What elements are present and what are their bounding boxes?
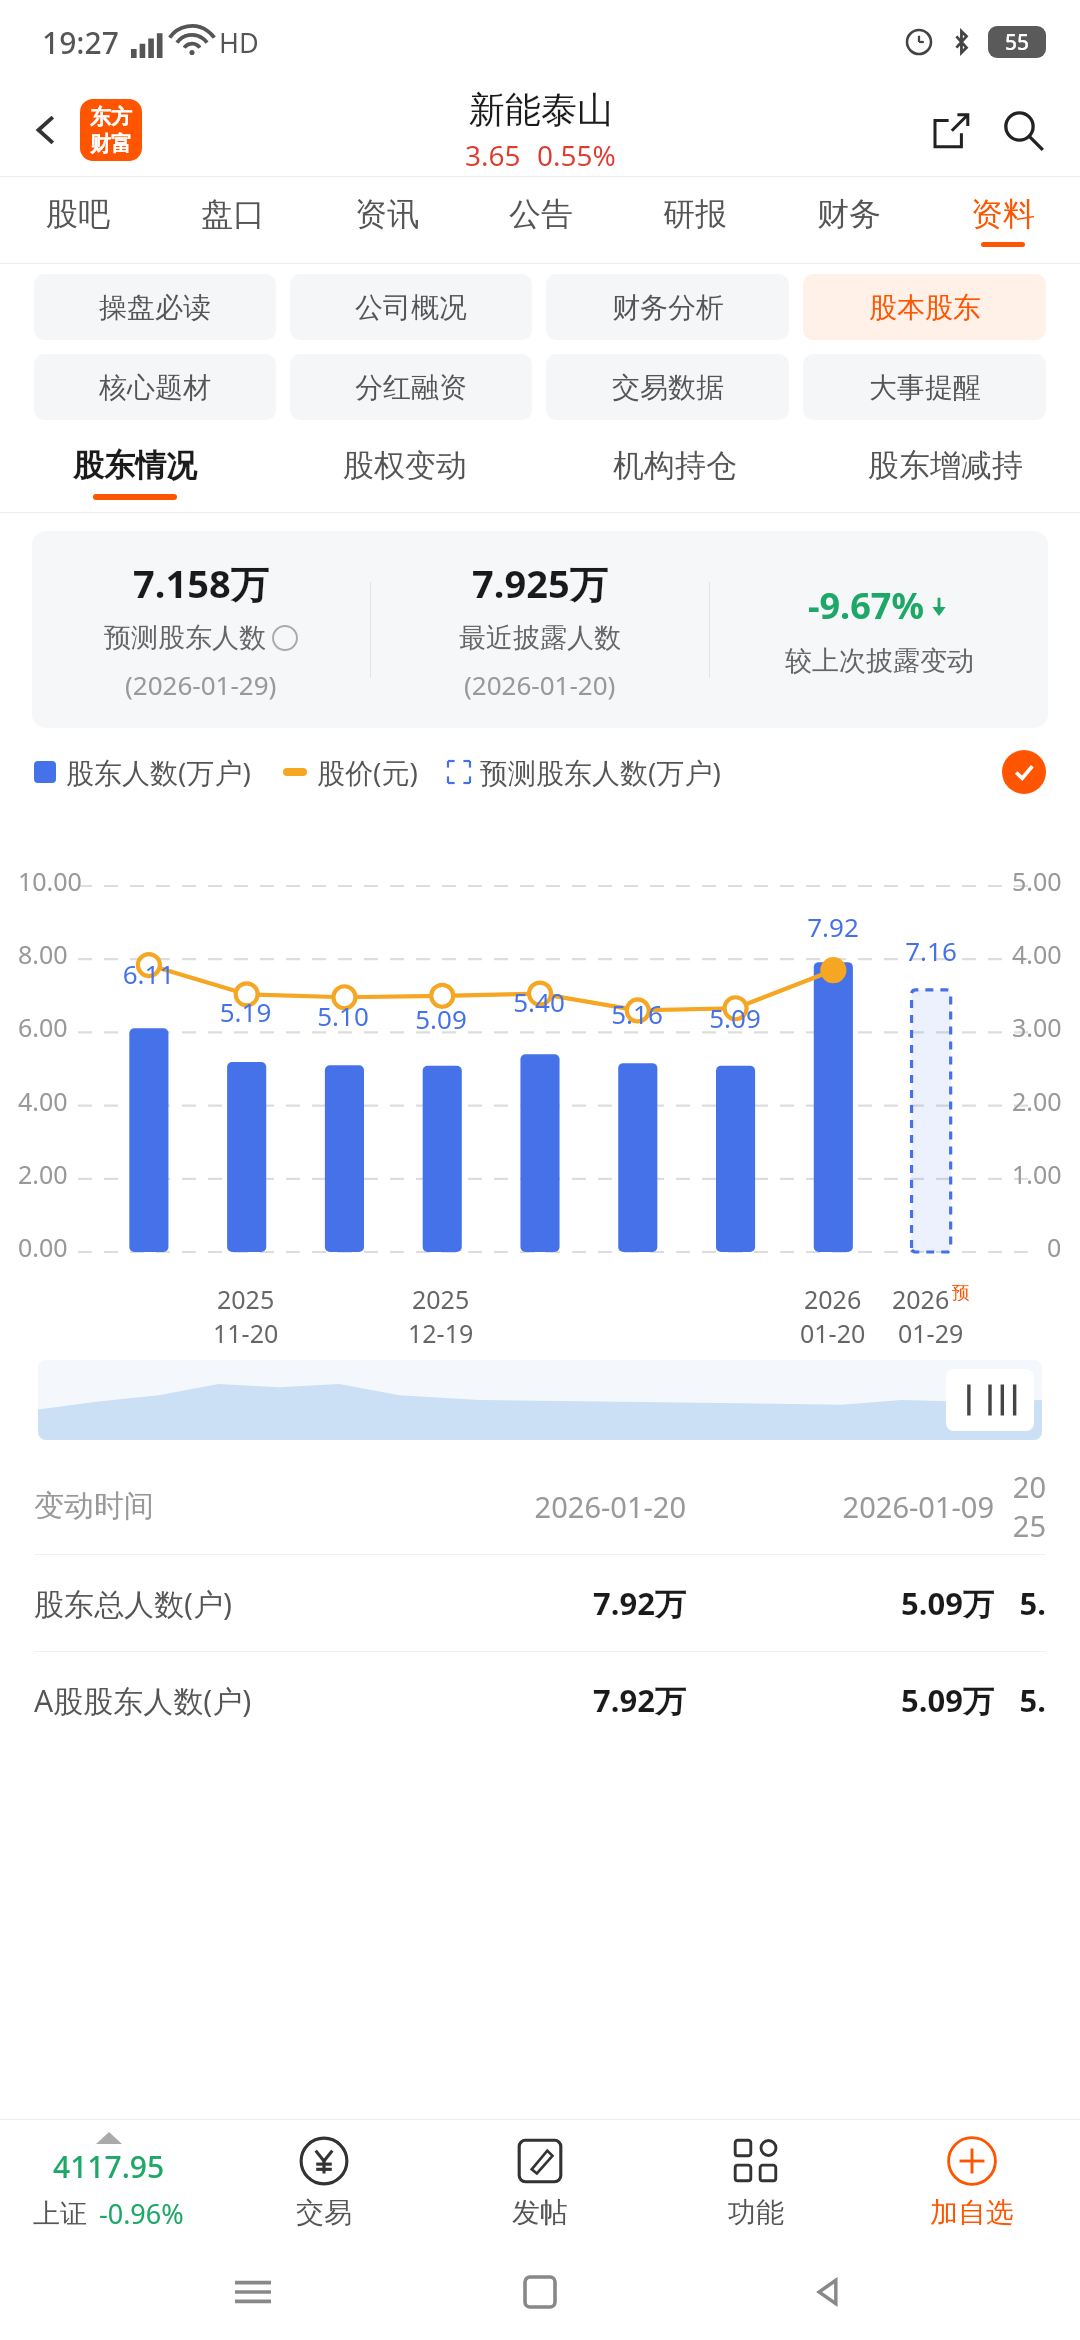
staticText: 3.65 (465, 136, 521, 174)
staticText: 最近披露人数 (459, 621, 621, 655)
staticText: -9.67% (808, 581, 924, 630)
button[interactable]: 机构持仓 (540, 434, 810, 512)
staticText: 5.09万 (704, 1679, 994, 1721)
button[interactable]: 功能 (648, 2120, 864, 2244)
button[interactable]: 股东总人数(户) (34, 1555, 1046, 1651)
staticText: 预测股东人数 (104, 621, 266, 655)
button[interactable]: 大事提醒 (803, 354, 1046, 420)
staticText: (2026-01-29) (125, 667, 277, 702)
button[interactable]: Search (992, 99, 1054, 161)
staticText: 11-20 (213, 1316, 279, 1350)
staticText: 2025 (412, 1282, 470, 1316)
button[interactable]: 股东情况 (0, 434, 270, 512)
staticText: 盘口 (201, 194, 265, 234)
staticText: 7.92 (784, 909, 882, 944)
staticText: 机构持仓 (613, 446, 737, 485)
staticText: 东方 (90, 104, 132, 130)
staticText: 操盘必读 (99, 290, 211, 325)
button[interactable]: 变动时间 (34, 1458, 1046, 1554)
staticText: 4.00 (1012, 937, 1062, 971)
staticText: 预测股东人数(万户) (480, 753, 721, 791)
button[interactable]: 操盘必读 (34, 274, 276, 340)
button[interactable]: 研报 (618, 177, 772, 263)
staticText: 7.16 (882, 933, 980, 968)
button[interactable]: Back (793, 2257, 863, 2327)
staticText: 5.40 (490, 984, 588, 1019)
staticText: 大事提醒 (869, 370, 981, 405)
staticText: 55 (1005, 28, 1030, 57)
staticText: 股本股东 (869, 290, 981, 325)
staticText: 股吧 (46, 194, 110, 234)
button[interactable]: Home (505, 2257, 575, 2327)
button[interactable]: 交易 (216, 2120, 432, 2244)
button[interactable]: 盘口 (155, 177, 310, 263)
staticText: 2026-01-20 (396, 1487, 686, 1526)
button[interactable]: East Money home (80, 99, 142, 161)
staticText: 0.55% (537, 136, 616, 174)
staticText: 股东情况 (73, 446, 197, 485)
button[interactable]: 交易数据 (546, 354, 789, 420)
button[interactable]: 财务分析 (546, 274, 789, 340)
staticText: 5.16 (588, 996, 686, 1031)
staticText: 2.00 (1012, 1084, 1062, 1118)
button[interactable]: 4117.95 (0, 2120, 216, 2244)
button[interactable]: 股权变动 (270, 434, 540, 512)
button[interactable]: Share (920, 99, 982, 161)
staticText: 股东人数(万户) (66, 753, 251, 791)
staticText: 预 (952, 1282, 970, 1305)
staticText: 公司概况 (355, 290, 467, 325)
staticText: 4117.95 (53, 2146, 165, 2187)
button[interactable]: Back (18, 102, 74, 158)
staticText: 财富 (90, 131, 132, 157)
staticText: 6.00 (18, 1010, 68, 1044)
staticText: 5.19 (197, 994, 294, 1029)
button[interactable] (38, 1360, 1042, 1440)
staticText: 较上次披露变动 (785, 644, 974, 678)
staticText: 6.11 (100, 956, 197, 991)
staticText: 12-19 (408, 1316, 474, 1350)
button[interactable]: Recent apps (218, 2257, 288, 2327)
button[interactable]: 股东增减持 (810, 434, 1080, 512)
button[interactable]: 分红融资 (290, 354, 532, 420)
staticText: 7.92万 (396, 1679, 686, 1721)
staticText: 2025 (1012, 1467, 1046, 1545)
staticText: 3.00 (1012, 1010, 1062, 1044)
button[interactable]: 公司概况 (290, 274, 532, 340)
staticText: 5.10 (294, 998, 392, 1033)
button[interactable]: 股吧 (0, 177, 155, 263)
button[interactable]: 公告 (464, 177, 618, 263)
button[interactable]: 财务 (772, 177, 926, 263)
staticText: 财务 (817, 194, 881, 234)
staticText: 上证 (33, 2197, 87, 2231)
button[interactable]: A股股东人数(户) (34, 1652, 1046, 1748)
button[interactable]: 核心题材 (34, 354, 276, 420)
staticText: 股价(元) (317, 753, 418, 791)
staticText: 核心题材 (99, 370, 211, 405)
staticText: 分红融资 (355, 370, 467, 405)
staticText: 2026 (804, 1282, 862, 1316)
staticText: 股东总人数(户) (34, 1583, 396, 1624)
button[interactable]: Confirm (1002, 750, 1046, 794)
staticText: 5.00 (1012, 864, 1062, 898)
staticText: 8.00 (18, 937, 68, 971)
button[interactable]: 发帖 (432, 2120, 648, 2244)
staticText: 2.00 (18, 1157, 68, 1191)
staticText: 财务分析 (612, 290, 724, 325)
staticText: 5.09万 (704, 1582, 994, 1624)
staticText: 1.00 (1012, 1157, 1062, 1191)
staticText: 交易数据 (612, 370, 724, 405)
staticText: 发帖 (512, 2195, 568, 2230)
staticText: 5.09 (392, 1001, 490, 1036)
button[interactable]: 股本股东 (803, 274, 1046, 340)
staticText: 交易 (296, 2195, 352, 2230)
staticText: 10.00 (18, 864, 82, 898)
button[interactable]: 资料 (926, 177, 1080, 263)
button[interactable]: 加自选 (864, 2120, 1080, 2244)
staticText: 5. (1012, 1582, 1046, 1624)
staticText: 4.00 (18, 1084, 68, 1118)
button[interactable]: 资讯 (310, 177, 464, 263)
staticText: 01-20 (800, 1316, 866, 1350)
staticText: 7.925万 (472, 557, 608, 609)
staticText: 功能 (728, 2195, 784, 2230)
button[interactable]: 7.158万 (32, 531, 1048, 728)
